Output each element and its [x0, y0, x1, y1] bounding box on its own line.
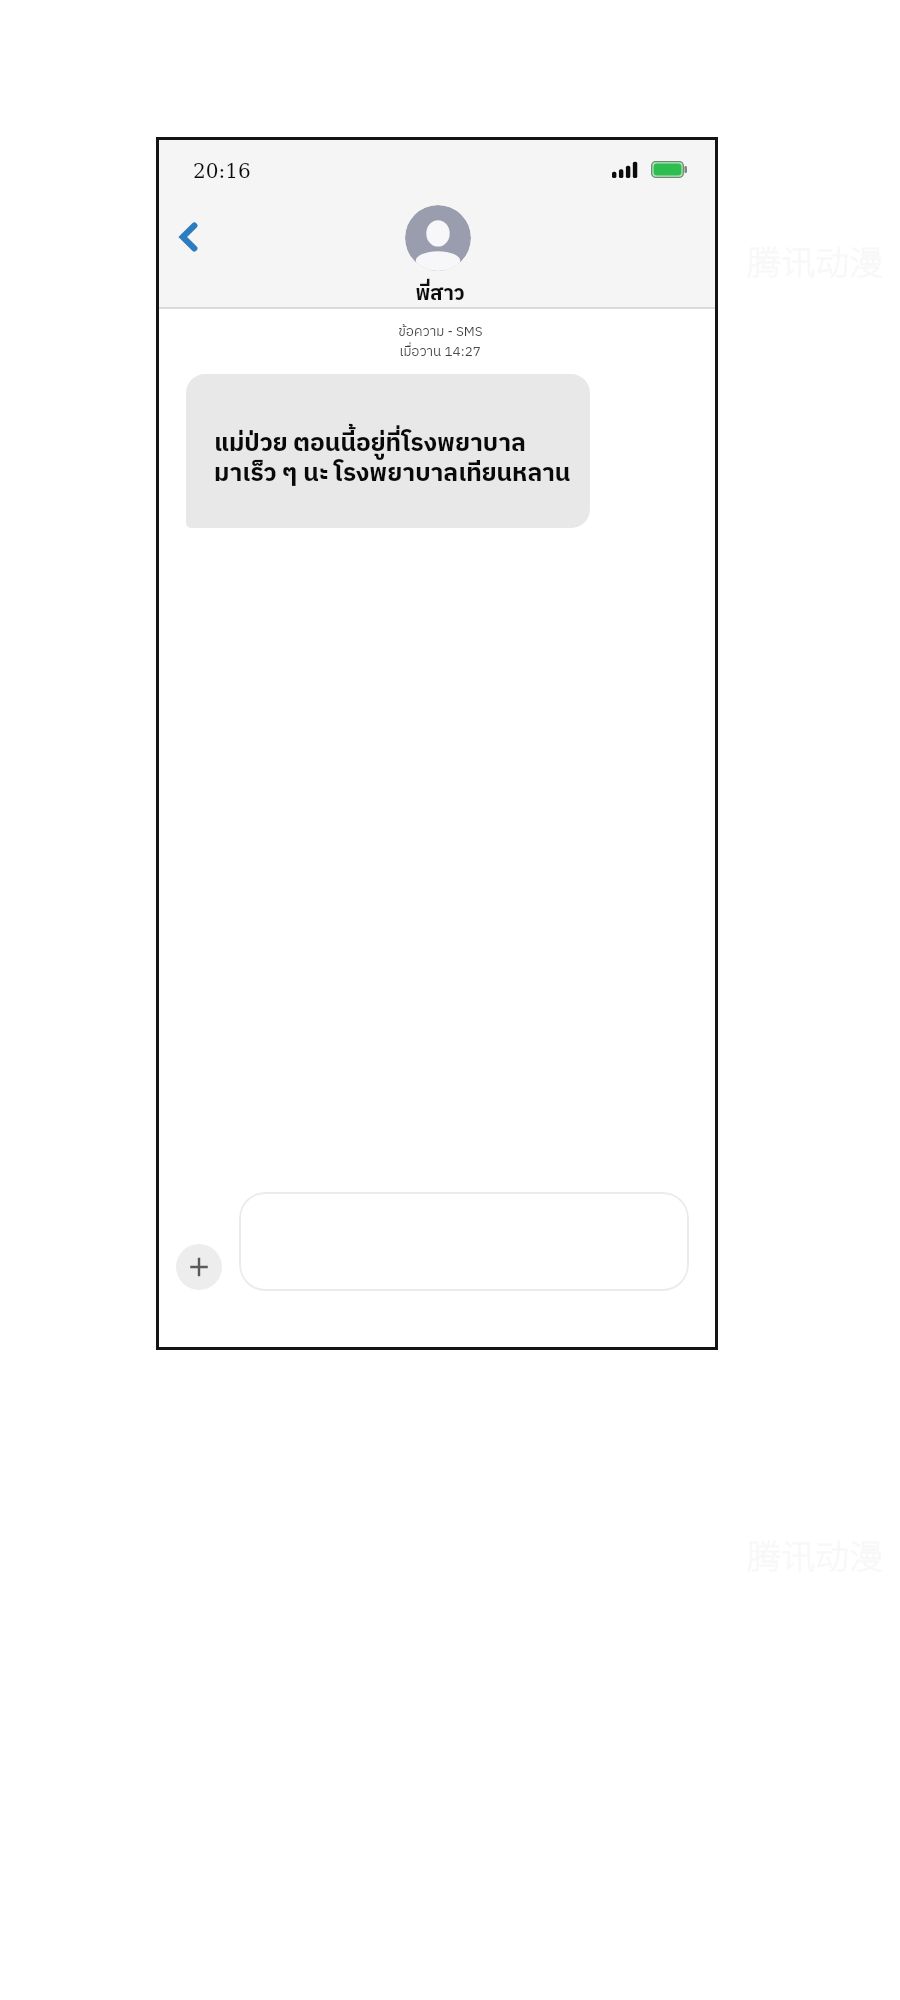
button[interactable]: Add attachment	[176, 1244, 222, 1290]
staticText: พี่สาว	[415, 277, 465, 311]
button[interactable]: พี่สาว	[370, 277, 510, 311]
staticText: มาเร็ว ๆ นะ โรงพยาบาลเทียนหลาน	[214, 453, 571, 494]
button[interactable]	[239, 1192, 689, 1291]
button[interactable]: Back	[162, 205, 216, 259]
staticText: แม่ป่วย ตอนนี้อยู่ที่โรงพยาบาล	[214, 423, 526, 464]
staticText: เมื่อวาน 14:27	[399, 341, 481, 363]
button[interactable]: Contact avatar	[405, 205, 471, 271]
staticText: ข้อความ - SMS	[398, 321, 483, 343]
button[interactable]: แม่ป่วย ตอนนี้อยู่ที่โรงพยาบาล	[186, 374, 590, 528]
staticText: 20:16	[193, 159, 251, 182]
